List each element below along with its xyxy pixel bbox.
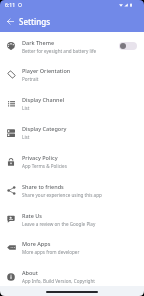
button[interactable]: Player Orientation: [0, 60, 144, 89]
button[interactable]: Display Category: [0, 118, 144, 147]
button[interactable]: About: [0, 262, 144, 291]
staticText: Dark Theme: [22, 39, 55, 46]
button[interactable]: Dark Theme: [0, 32, 144, 60]
staticText: Portrait: [22, 76, 39, 82]
staticText: Player Orientation: [22, 67, 71, 74]
staticText: About: [22, 269, 38, 276]
staticText: Better for eyesight and battery life: [22, 48, 97, 54]
staticText: More apps from developer: [22, 249, 80, 255]
staticText: Display Channel: [22, 96, 65, 103]
button[interactable]: Privacy Policy: [0, 147, 144, 176]
staticText: More Apps: [22, 240, 51, 247]
staticText: Settings: [19, 16, 51, 27]
staticText: Rate Us: [22, 212, 43, 219]
button[interactable]: [119, 42, 137, 50]
button[interactable]: Share to friends: [0, 176, 144, 205]
staticText: Share to friends: [22, 183, 64, 190]
button[interactable]: More Apps: [0, 233, 144, 262]
staticText: App Terms & Policies: [22, 163, 67, 169]
staticText: Share your experience using this app: [22, 192, 102, 198]
staticText: 6:11: [5, 1, 16, 8]
button[interactable]: Display Channel: [0, 89, 144, 118]
staticText: Privacy Policy: [22, 154, 58, 161]
staticText: Display Category: [22, 125, 67, 132]
staticText: Leave a review on the Google Play: [22, 221, 96, 227]
staticText: App Info, Build Version, Copyright: [22, 278, 95, 284]
button[interactable]: Back: [0, 12, 18, 32]
button[interactable]: Rate Us: [0, 205, 144, 233]
staticText: List: [22, 105, 30, 111]
staticText: List: [22, 134, 30, 140]
